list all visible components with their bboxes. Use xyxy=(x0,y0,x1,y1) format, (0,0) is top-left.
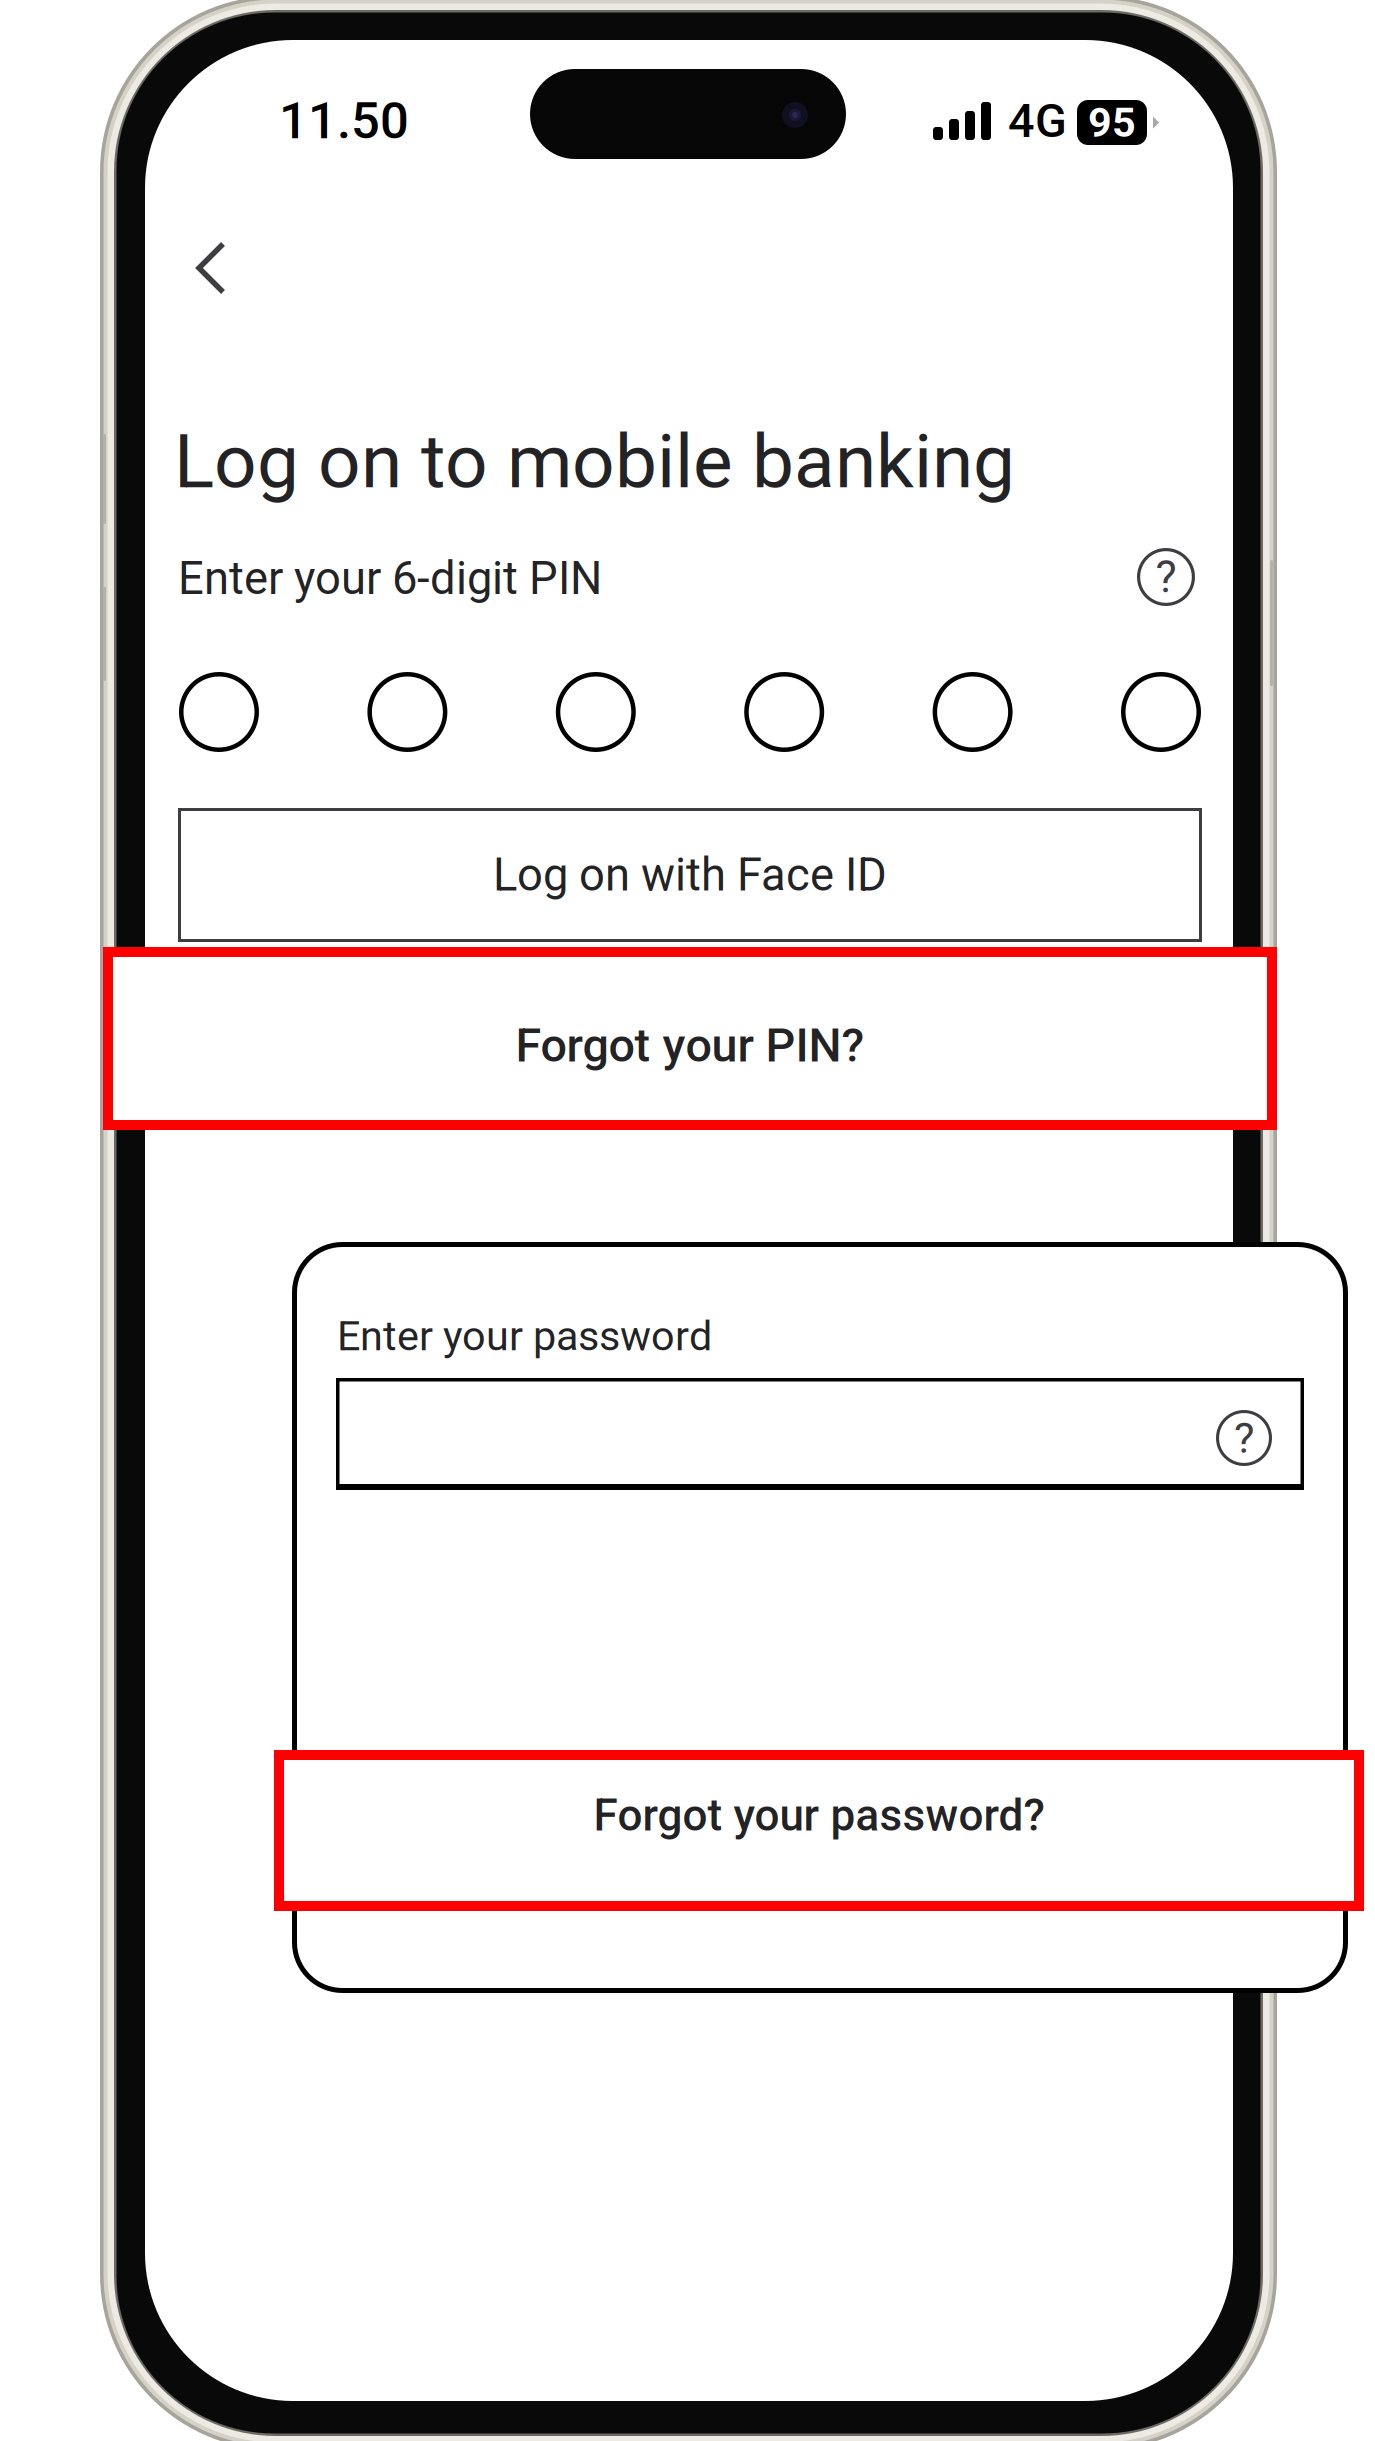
button[interactable]: Help with your PIN xyxy=(1122,533,1210,621)
staticText: ? xyxy=(1155,551,1176,603)
staticText: ? xyxy=(1234,1413,1254,1463)
button[interactable]: Forgot your password? xyxy=(274,1750,1364,1911)
staticText: 95 xyxy=(1088,98,1136,147)
button[interactable]: Back xyxy=(163,220,259,316)
button[interactable]: Log on with Face ID xyxy=(178,808,1202,942)
staticText: Enter your 6-digit PIN xyxy=(178,552,602,605)
staticText: Log on to mobile banking xyxy=(174,418,1015,505)
staticText: Forgot your password? xyxy=(593,1790,1044,1841)
button[interactable]: Help with your password xyxy=(1202,1396,1286,1480)
button[interactable]: Forgot your PIN? xyxy=(103,947,1277,1130)
staticText: 11.50 xyxy=(279,91,409,151)
staticText: Log on with Face ID xyxy=(493,848,887,901)
staticText: 4G xyxy=(1008,94,1067,148)
staticText: Forgot your PIN? xyxy=(515,1018,864,1073)
staticText: Enter your password xyxy=(337,1312,712,1360)
